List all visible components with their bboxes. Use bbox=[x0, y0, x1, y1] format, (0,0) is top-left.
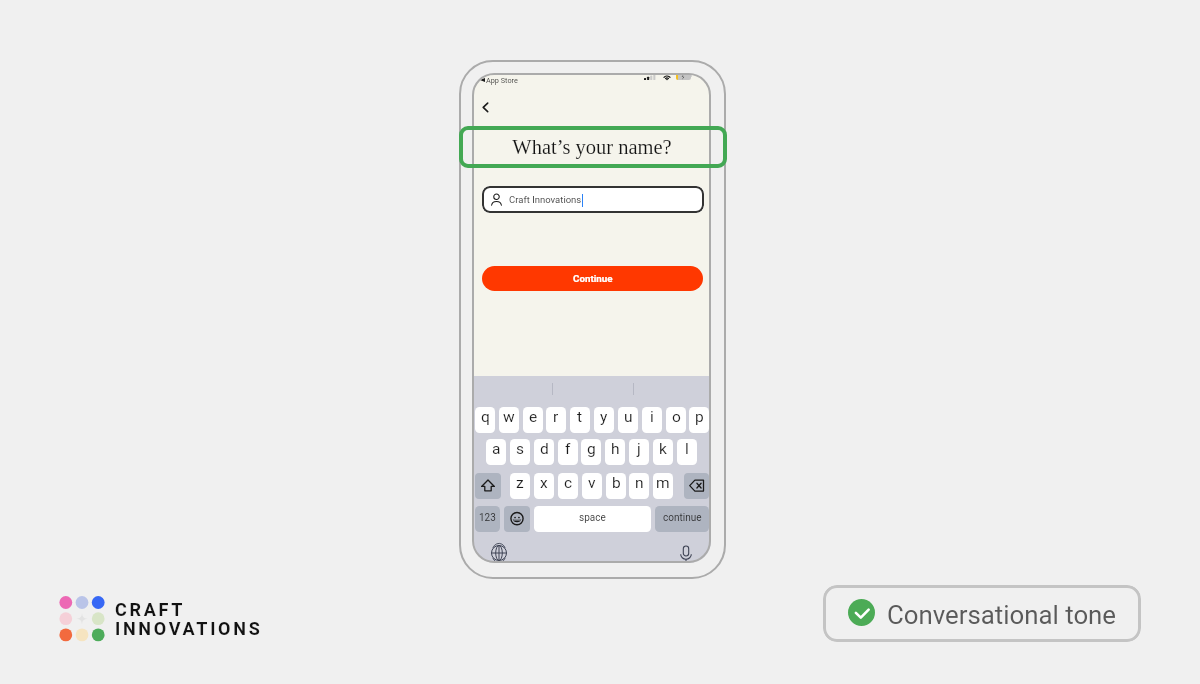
button[interactable]: c bbox=[558, 473, 578, 499]
staticText: u bbox=[624, 408, 633, 426]
button[interactable]: q bbox=[475, 407, 495, 433]
button[interactable]: b bbox=[606, 473, 626, 499]
button[interactable]: Craft Innovations bbox=[482, 186, 704, 213]
button[interactable]: Dictate bbox=[679, 545, 693, 563]
button[interactable]: f bbox=[558, 439, 578, 465]
staticText: x bbox=[540, 474, 548, 492]
staticText: j bbox=[637, 440, 641, 458]
button[interactable]: Conversational tone bbox=[823, 585, 1141, 642]
staticText: t bbox=[577, 408, 583, 426]
button[interactable]: Change keyboard bbox=[491, 545, 507, 561]
staticText: continue bbox=[663, 512, 702, 524]
button[interactable]: g bbox=[581, 439, 601, 465]
staticText: e bbox=[529, 408, 538, 426]
staticText: 123 bbox=[479, 512, 496, 524]
button[interactable]: Delete bbox=[684, 473, 709, 499]
button[interactable]: t bbox=[570, 407, 590, 433]
staticText: v bbox=[588, 474, 596, 492]
button[interactable]: y bbox=[594, 407, 614, 433]
staticText: y bbox=[600, 408, 608, 426]
button[interactable]: 123 bbox=[475, 506, 500, 532]
staticText: space bbox=[579, 512, 606, 524]
button[interactable]: e bbox=[523, 407, 543, 433]
staticText: f bbox=[565, 440, 571, 458]
button[interactable]: j bbox=[629, 439, 649, 465]
button[interactable]: m bbox=[653, 473, 673, 499]
button[interactable]: Back bbox=[477, 95, 499, 117]
button[interactable]: l bbox=[677, 439, 697, 465]
button[interactable]: o bbox=[666, 407, 686, 433]
staticText: INNOVATIONS bbox=[115, 618, 263, 639]
button[interactable]: continue bbox=[655, 506, 709, 532]
staticText: b bbox=[612, 474, 621, 492]
staticText: Craft Innovations bbox=[509, 194, 582, 205]
staticText: c bbox=[564, 474, 573, 492]
button[interactable]: d bbox=[534, 439, 554, 465]
staticText: g bbox=[587, 440, 596, 458]
button[interactable]: r bbox=[546, 407, 566, 433]
staticText: h bbox=[611, 440, 620, 458]
staticText: What’s your name? bbox=[512, 136, 672, 159]
button[interactable]: s bbox=[510, 439, 530, 465]
button[interactable]: Shift bbox=[475, 473, 501, 499]
staticText: Conversational tone bbox=[887, 600, 1117, 630]
staticText: CRAFT bbox=[115, 599, 186, 620]
staticText: q bbox=[481, 408, 490, 426]
staticText: o bbox=[672, 408, 681, 426]
staticText: d bbox=[540, 440, 549, 458]
button[interactable]: z bbox=[510, 473, 530, 499]
staticText: a bbox=[492, 440, 501, 458]
button[interactable]: Emoji bbox=[504, 506, 530, 532]
staticText: z bbox=[516, 474, 524, 492]
button[interactable]: x bbox=[534, 473, 554, 499]
button[interactable]: n bbox=[629, 473, 649, 499]
staticText: r bbox=[553, 408, 559, 426]
button[interactable]: h bbox=[605, 439, 625, 465]
staticText: i bbox=[650, 408, 654, 426]
button[interactable]: w bbox=[499, 407, 519, 433]
staticText: s bbox=[516, 440, 524, 458]
staticText: l bbox=[685, 440, 689, 458]
staticText: Continue bbox=[573, 273, 613, 284]
button[interactable]: i bbox=[642, 407, 662, 433]
button[interactable]: k bbox=[653, 439, 673, 465]
button[interactable]: Continue bbox=[482, 266, 703, 291]
staticText: m bbox=[656, 474, 670, 492]
button[interactable]: v bbox=[582, 473, 602, 499]
staticText: k bbox=[659, 440, 667, 458]
button[interactable]: a bbox=[486, 439, 506, 465]
button[interactable]: p bbox=[689, 407, 709, 433]
staticText: App Store bbox=[486, 76, 518, 85]
button[interactable]: u bbox=[618, 407, 638, 433]
button[interactable]: space bbox=[534, 506, 651, 532]
staticText: w bbox=[503, 408, 515, 426]
staticText: n bbox=[635, 474, 644, 492]
staticText: p bbox=[695, 408, 704, 426]
